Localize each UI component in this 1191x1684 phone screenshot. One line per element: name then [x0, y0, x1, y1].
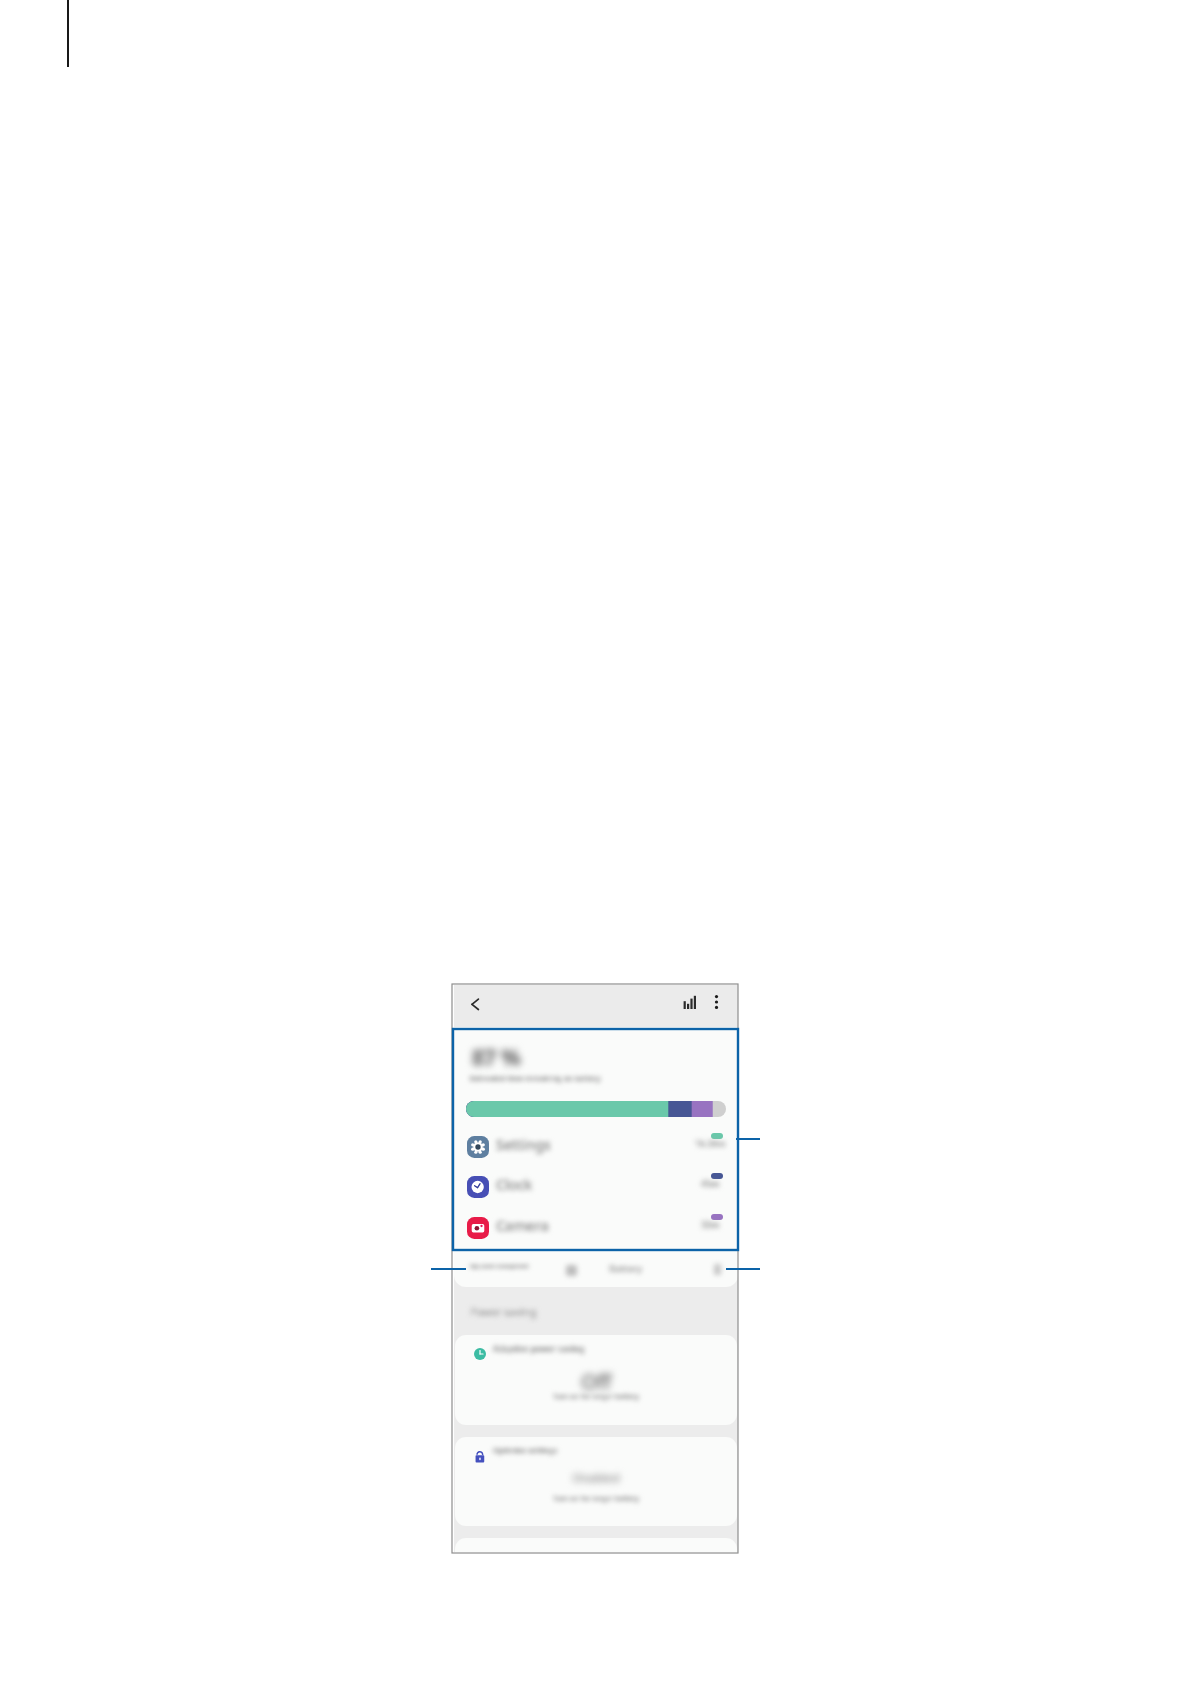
staticText: Optimise settings — [493, 1445, 558, 1456]
staticText: Camera — [496, 1216, 549, 1236]
staticText: App power management — [470, 1263, 529, 1270]
button[interactable]: Back — [461, 988, 489, 1016]
staticText: App power management — [470, 1263, 529, 1270]
staticText: 87 % — [473, 1043, 522, 1072]
staticText: 45m — [652, 1178, 738, 1190]
staticText: Turn on for longer battery — [455, 1392, 737, 1402]
staticText: Estimated time remaining on battery — [470, 1073, 601, 1083]
staticText: Disabled — [455, 1470, 737, 1486]
staticText: 1h 24m — [652, 1138, 738, 1150]
staticText: Disabled — [455, 1470, 737, 1486]
staticText: Clock — [496, 1175, 533, 1195]
staticText: Disabled — [455, 1470, 737, 1486]
staticText: 87 % — [471, 1043, 520, 1072]
staticText: Off — [456, 1368, 737, 1395]
staticText: Off — [455, 1368, 736, 1395]
staticText: Battery — [609, 1262, 642, 1275]
staticText: Off — [455, 1369, 737, 1396]
staticText: Power saving — [470, 1305, 537, 1319]
staticText: 32m — [652, 1219, 738, 1231]
button[interactable]: Camera — [454, 1212, 738, 1252]
staticText: Estimated time remaining on battery — [470, 1073, 601, 1083]
staticText: Camera — [496, 1216, 549, 1236]
staticText: 1h 24m — [652, 1138, 738, 1150]
staticText: Battery — [609, 1262, 642, 1275]
button[interactable]: Battery usage chart — [681, 990, 705, 1014]
staticText: 1h 24m — [652, 1138, 738, 1150]
staticText: Optimise settings — [493, 1445, 558, 1456]
staticText: Turn on for longer battery — [455, 1392, 737, 1402]
staticText: Disabled — [455, 1470, 737, 1486]
staticText: Adaptive power saving — [493, 1343, 585, 1355]
staticText: Adaptive power saving — [493, 1343, 585, 1355]
staticText: Camera — [496, 1216, 549, 1236]
button[interactable]: Settings — [454, 1131, 738, 1171]
staticText: Adaptive power saving — [493, 1343, 585, 1355]
staticText: 45m — [652, 1178, 738, 1190]
staticText: 32m — [652, 1219, 738, 1231]
staticText: Power saving — [470, 1305, 537, 1319]
staticText: Turn on for longer battery — [455, 1494, 737, 1504]
button[interactable]: More options — [705, 990, 729, 1014]
staticText: Power saving — [470, 1305, 537, 1319]
staticText: Estimated time remaining on battery — [470, 1073, 601, 1083]
staticText: App power management — [470, 1263, 529, 1270]
staticText: Battery — [609, 1262, 642, 1275]
staticText: Off — [455, 1367, 737, 1394]
staticText: Turn on for longer battery — [455, 1494, 737, 1504]
staticText: Settings — [496, 1135, 551, 1155]
staticText: App power management — [470, 1263, 529, 1270]
button[interactable]: Battery level — [706, 1259, 728, 1281]
staticText: 87 % — [472, 1043, 521, 1072]
staticText: 32m — [652, 1219, 738, 1231]
staticText: Battery — [609, 1262, 642, 1275]
staticText: 87 % — [472, 1042, 521, 1071]
staticText: Adaptive power saving — [493, 1343, 585, 1355]
staticText: Turn on for longer battery — [455, 1494, 737, 1504]
button[interactable]: App power management — [464, 1255, 538, 1283]
staticText: Camera — [496, 1216, 549, 1236]
staticText: Optimise settings — [493, 1445, 558, 1456]
staticText: Camera — [496, 1216, 549, 1236]
staticText: Clock — [496, 1175, 533, 1195]
button[interactable]: Adaptive power saving — [455, 1335, 737, 1425]
button[interactable]: Clock — [454, 1171, 738, 1211]
staticText: Settings — [496, 1135, 551, 1155]
staticText: Off — [455, 1368, 737, 1395]
staticText: Settings — [496, 1135, 551, 1155]
staticText: Turn on for longer battery — [455, 1392, 737, 1402]
staticText: Battery — [609, 1262, 642, 1275]
staticText: Optimise settings — [493, 1445, 558, 1456]
staticText: 32m — [652, 1219, 738, 1231]
staticText: Clock — [496, 1175, 533, 1195]
button[interactable]: Optimise settings — [455, 1437, 737, 1526]
staticText: 45m — [652, 1178, 738, 1190]
button[interactable]: Show usage details — [561, 1260, 583, 1282]
staticText: Turn on for longer battery — [455, 1392, 737, 1402]
staticText: App power management — [470, 1263, 529, 1270]
staticText: Estimated time remaining on battery — [470, 1073, 601, 1083]
staticText: Settings — [496, 1135, 551, 1155]
staticText: Turn on for longer battery — [455, 1392, 737, 1402]
staticText: Adaptive power saving — [493, 1343, 585, 1355]
staticText: Power saving — [470, 1305, 537, 1319]
staticText: Power saving — [470, 1305, 537, 1319]
staticText: 45m — [652, 1178, 738, 1190]
staticText: Clock — [496, 1175, 533, 1195]
staticText: 1h 24m — [652, 1138, 738, 1150]
staticText: Settings — [496, 1135, 551, 1155]
staticText: Turn on for longer battery — [455, 1494, 737, 1504]
button[interactable]: Battery — [605, 1255, 657, 1283]
staticText: Disabled — [455, 1470, 737, 1486]
staticText: 45m — [652, 1178, 738, 1190]
staticText: Optimise settings — [493, 1445, 558, 1456]
staticText: 87 % — [472, 1044, 521, 1073]
staticText: 32m — [652, 1219, 738, 1231]
staticText: 1h 24m — [652, 1138, 738, 1150]
staticText: Estimated time remaining on battery — [470, 1073, 601, 1083]
staticText: Clock — [496, 1175, 533, 1195]
staticText: Turn on for longer battery — [455, 1494, 737, 1504]
